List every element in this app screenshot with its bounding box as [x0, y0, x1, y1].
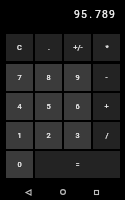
button[interactable]: Recents	[85, 183, 107, 200]
button[interactable]: /	[93, 122, 120, 149]
staticText: 8	[102, 8, 108, 20]
button[interactable]: 6	[64, 93, 91, 120]
staticText: 5	[81, 8, 87, 20]
button[interactable]: 5	[35, 93, 62, 120]
staticText: 1	[17, 131, 22, 140]
staticText: *	[105, 43, 109, 52]
staticText: 7	[95, 8, 101, 20]
staticText: 8	[46, 73, 51, 82]
staticText: 9	[75, 73, 80, 82]
button[interactable]: C	[6, 34, 33, 61]
staticText: =	[75, 160, 80, 169]
staticText: 5	[46, 102, 51, 111]
staticText: +/-	[73, 43, 83, 52]
button[interactable]: 2	[35, 122, 62, 149]
button[interactable]: 1	[6, 122, 33, 149]
staticText: 6	[75, 102, 80, 111]
staticText: 9	[74, 8, 80, 20]
staticText: C	[17, 43, 22, 52]
staticText: /	[105, 131, 109, 140]
button[interactable]: *	[93, 34, 120, 61]
button[interactable]: =	[35, 151, 120, 178]
button[interactable]: .	[35, 34, 62, 61]
button[interactable]: -	[93, 64, 120, 91]
staticText: 2	[46, 131, 51, 140]
staticText: 4	[17, 102, 22, 111]
button[interactable]: Back	[17, 183, 39, 200]
staticText: 0	[17, 160, 22, 169]
staticText: .	[48, 43, 50, 52]
staticText: +	[104, 102, 109, 111]
staticText: .	[89, 8, 92, 20]
button[interactable]: +	[93, 93, 120, 120]
button[interactable]: 3	[64, 122, 91, 149]
button[interactable]: 9	[64, 64, 91, 91]
staticText: -	[105, 73, 108, 82]
button[interactable]: 7	[6, 64, 33, 91]
staticText: 7	[17, 73, 22, 82]
button[interactable]: 8	[35, 64, 62, 91]
button[interactable]: Home	[52, 183, 74, 200]
button[interactable]: 0	[6, 151, 33, 178]
button[interactable]: 4	[6, 93, 33, 120]
staticText: 3	[75, 131, 80, 140]
button[interactable]: +/-	[64, 34, 91, 61]
staticText: 9	[109, 8, 115, 20]
